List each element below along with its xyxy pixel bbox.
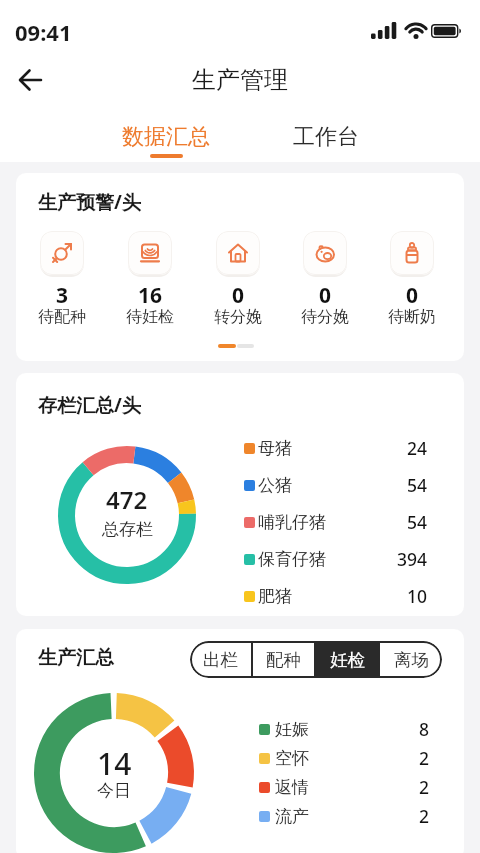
staticText: 待断奶	[388, 307, 436, 327]
button[interactable]	[292, 225, 358, 345]
staticText: 哺乳仔猪	[258, 512, 326, 533]
staticText: 3	[56, 281, 69, 309]
button[interactable]: 妊检	[316, 641, 378, 678]
button[interactable]	[379, 225, 445, 345]
staticText: 总存栏	[102, 519, 153, 540]
staticText: 14	[97, 743, 132, 775]
staticText: 2	[419, 775, 430, 799]
button[interactable]	[205, 225, 271, 345]
staticText: 保育仔猪	[258, 549, 326, 570]
staticText: 0	[319, 281, 332, 309]
button[interactable]: 配种	[253, 641, 314, 678]
button[interactable]: 离场	[380, 641, 442, 678]
staticText: 今日	[97, 780, 131, 801]
staticText: 转分娩	[214, 307, 262, 327]
staticText: 生产管理	[192, 65, 288, 95]
staticText: 54	[407, 510, 428, 534]
staticText: 离场	[394, 649, 429, 671]
button[interactable]: 工作台	[246, 114, 406, 160]
staticText: 生产汇总	[38, 646, 114, 670]
staticText: 394	[397, 547, 428, 571]
staticText: 妊检	[330, 649, 365, 671]
staticText: 存栏汇总/头	[38, 392, 141, 418]
staticText: 出栏	[203, 649, 238, 671]
staticText: 母猪	[258, 438, 292, 459]
staticText: 0	[406, 281, 419, 309]
button[interactable]	[29, 225, 95, 345]
staticText: 2	[419, 746, 430, 770]
staticText: 16	[138, 281, 163, 309]
staticText: 0	[232, 281, 245, 309]
staticText: 09:41	[15, 17, 72, 47]
staticText: 数据汇总	[122, 123, 210, 151]
button[interactable]	[117, 225, 183, 345]
staticText: 待分娩	[301, 307, 349, 327]
staticText: 配种	[266, 649, 301, 671]
staticText: 待配种	[38, 307, 86, 327]
staticText: 空怀	[275, 748, 309, 769]
staticText: 返情	[275, 777, 309, 798]
staticText: 公猪	[258, 475, 292, 496]
button[interactable]: 出栏	[190, 641, 251, 678]
button[interactable]: 数据汇总	[86, 114, 246, 160]
staticText: 流产	[275, 806, 309, 827]
staticText: 8	[419, 717, 430, 741]
staticText: 肥猪	[258, 586, 292, 607]
staticText: 妊娠	[275, 719, 309, 740]
staticText: 54	[407, 473, 428, 497]
staticText: 472	[106, 483, 148, 512]
staticText: 生产预警/头	[38, 189, 141, 215]
button[interactable]	[8, 60, 52, 100]
staticText: 10	[407, 584, 428, 608]
staticText: 待妊检	[126, 307, 174, 327]
staticText: 2	[419, 804, 430, 828]
staticText: 工作台	[293, 123, 359, 151]
staticText: 24	[407, 436, 428, 460]
